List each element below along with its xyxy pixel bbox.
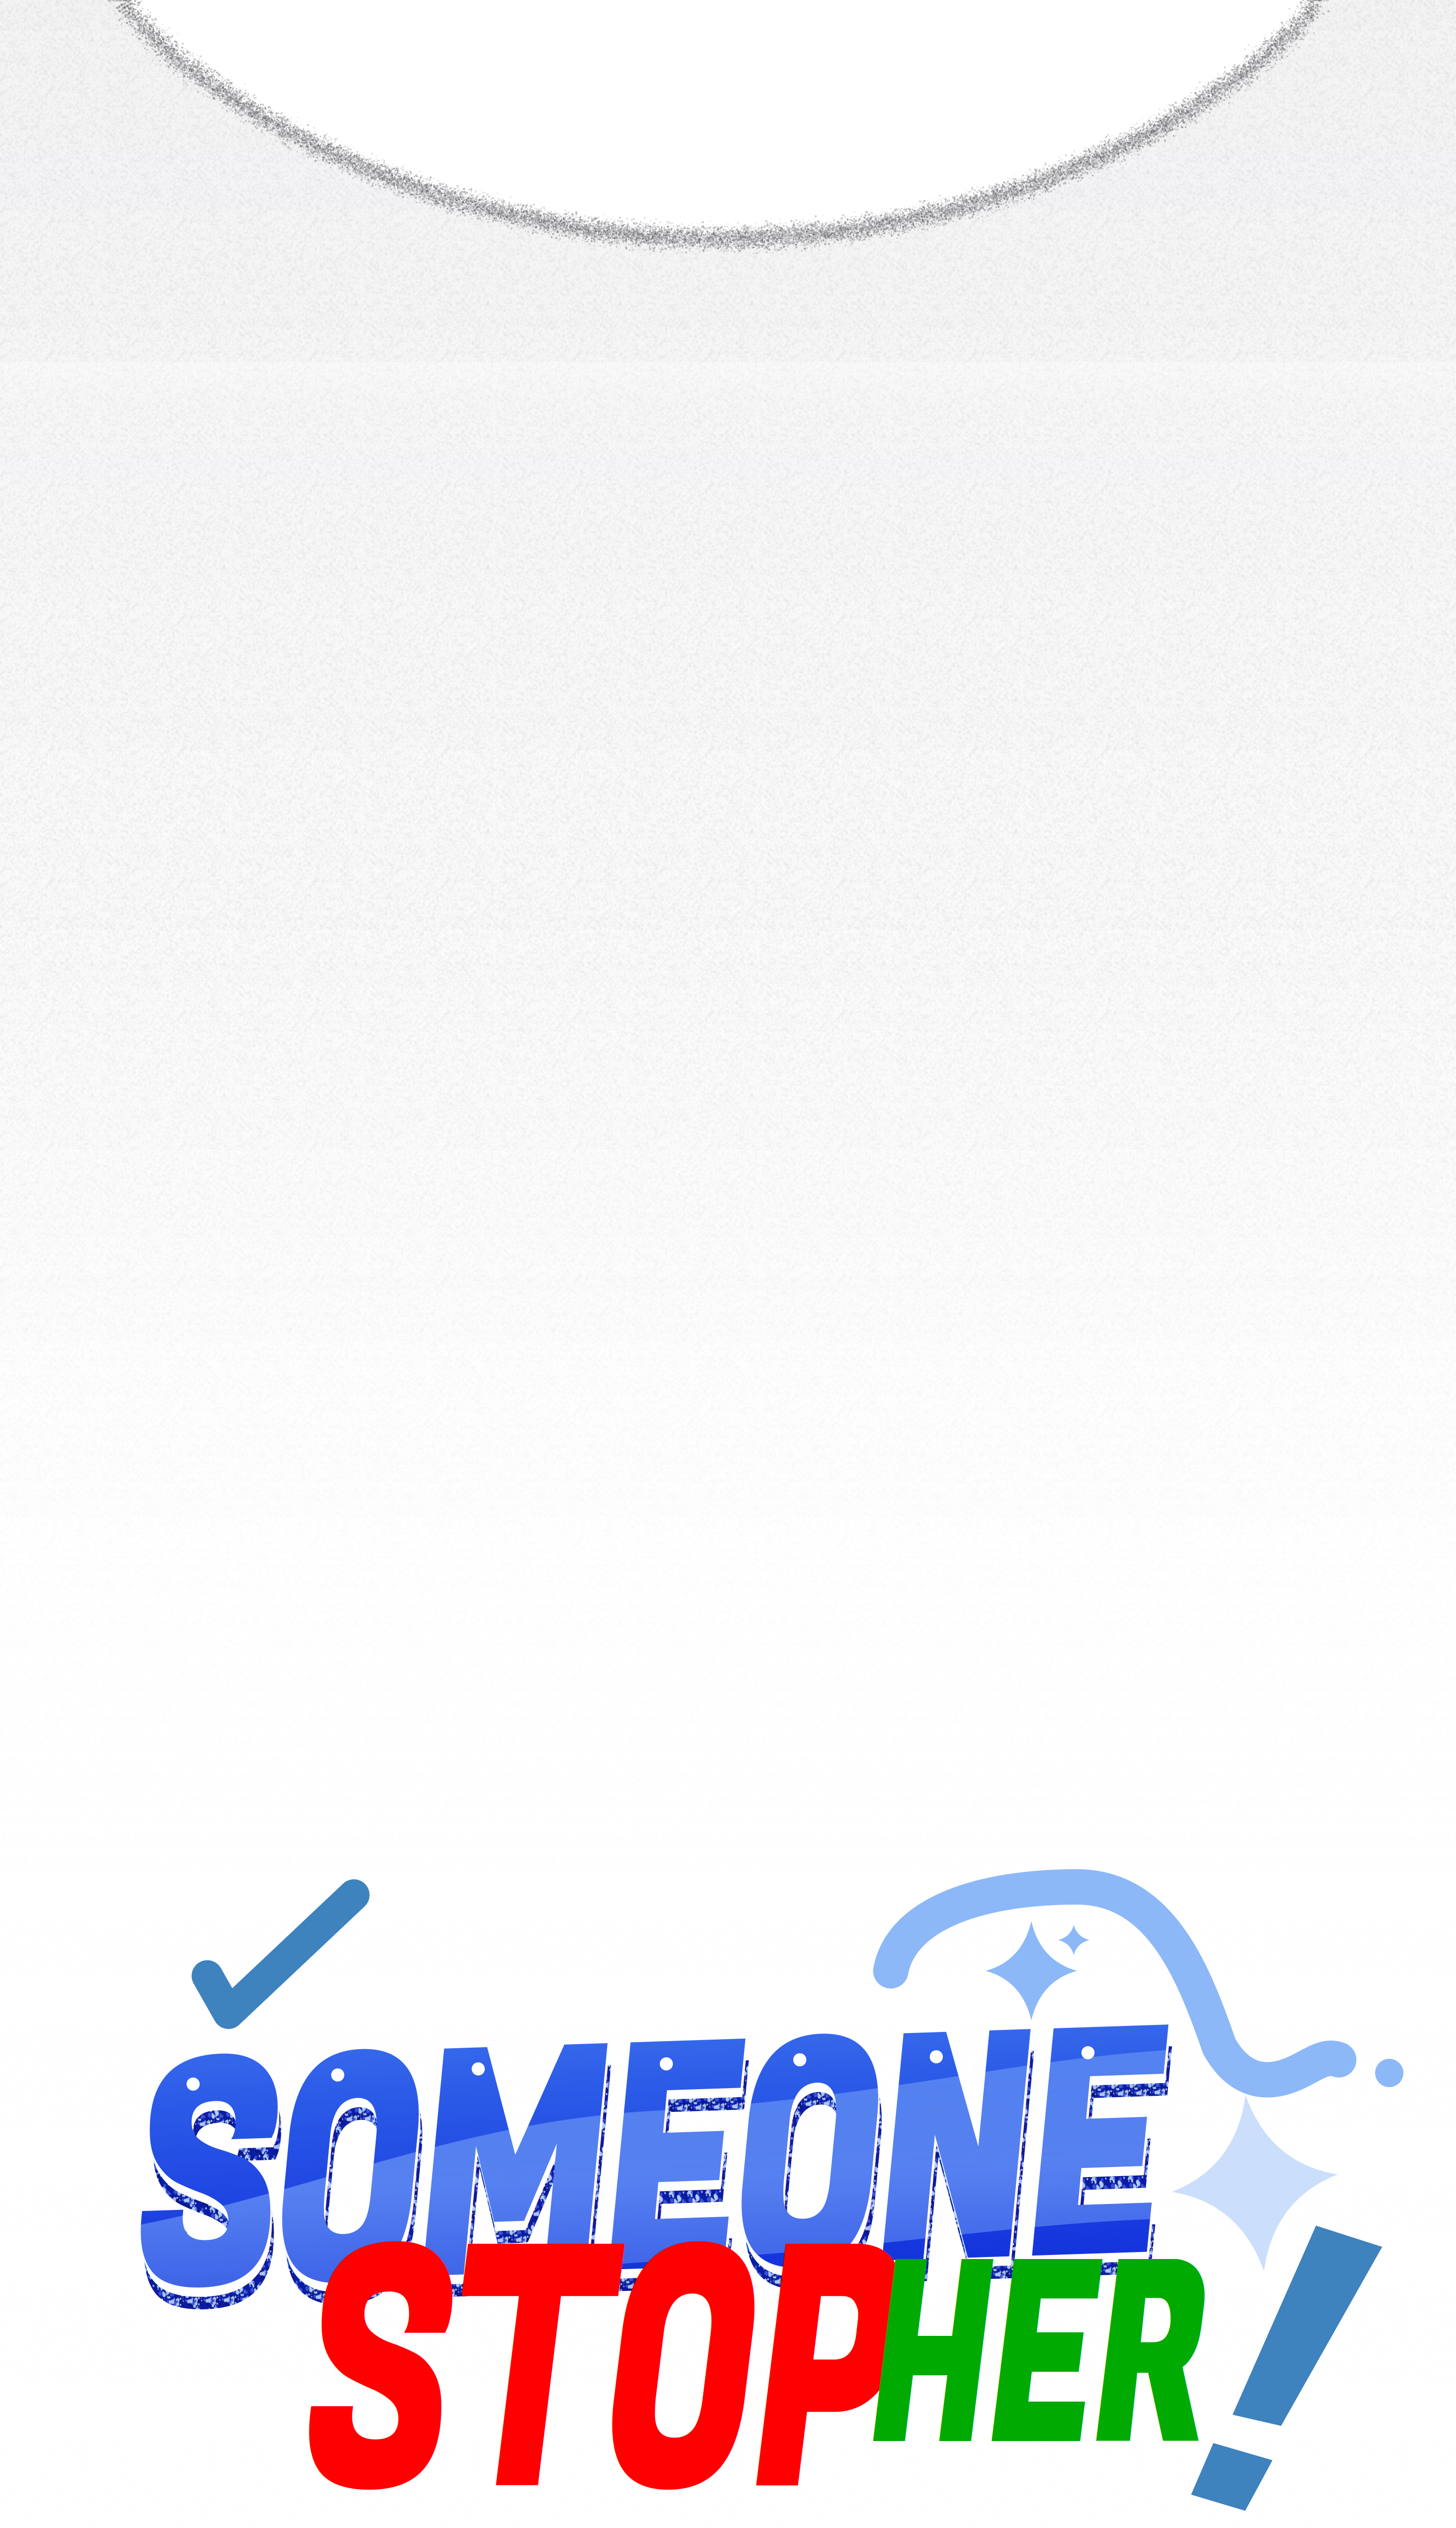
staticText: STOP xyxy=(256,2182,948,2528)
button[interactable]: Someone Stop Her! xyxy=(0,0,1456,2528)
staticText: SOMEONE xyxy=(0,1966,1305,2391)
staticText: HER xyxy=(845,2214,1233,2511)
